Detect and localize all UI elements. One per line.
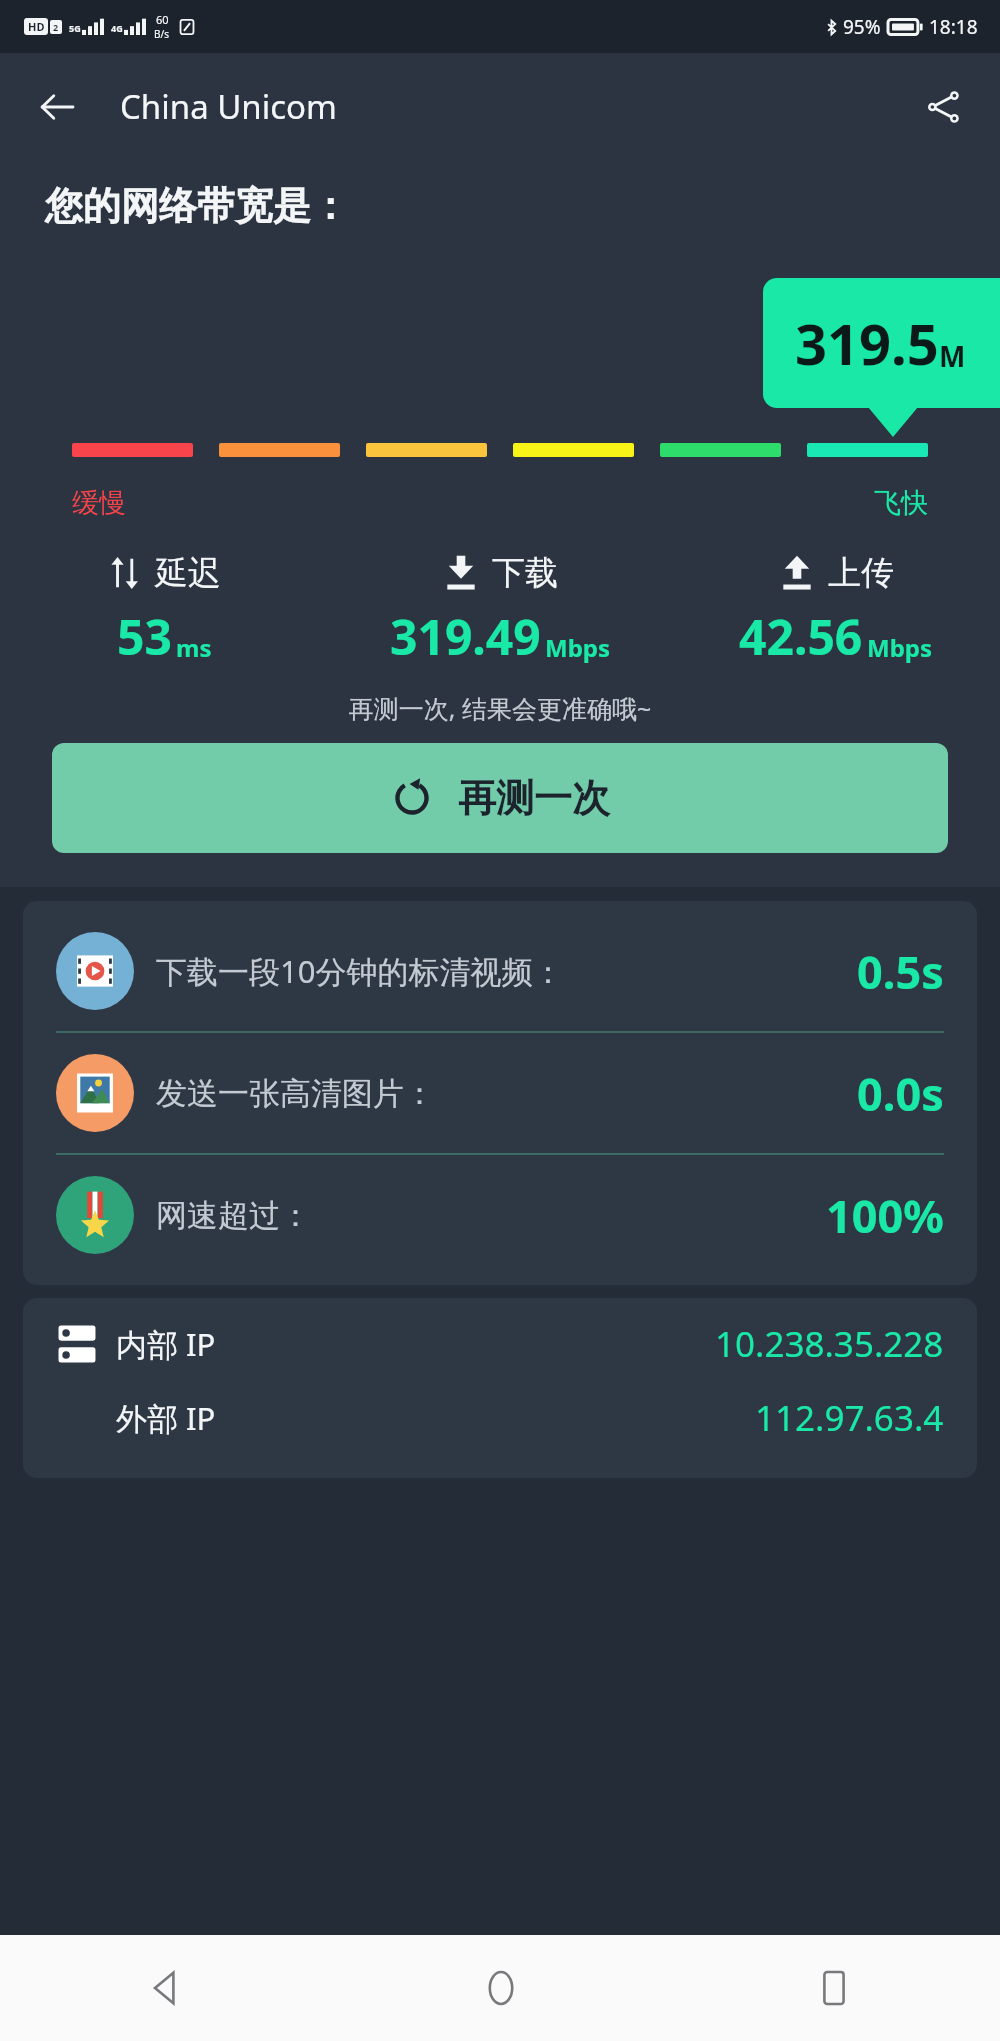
- staticText: 53: [117, 604, 172, 669]
- button[interactable]: 外部 IP: [56, 1394, 944, 1442]
- staticText: China Unicom: [120, 84, 337, 129]
- staticText: HD: [28, 19, 45, 34]
- button[interactable]: 发送一张高清图片：: [23, 1033, 977, 1153]
- staticText: 延迟: [155, 552, 221, 594]
- staticText: 发送一张高清图片：: [156, 1074, 435, 1113]
- staticText: 2: [53, 21, 59, 33]
- button[interactable]: Recent apps: [667, 1935, 1000, 2041]
- staticText: 内部 IP: [116, 1323, 216, 1365]
- staticText: Mbps: [867, 631, 933, 664]
- staticText: 缓慢: [72, 486, 126, 520]
- staticText: 网速超过：: [156, 1196, 311, 1235]
- staticText: 0.0s: [857, 1063, 944, 1124]
- staticText: 下载一段10分钟的标清视频：: [156, 950, 564, 992]
- button[interactable]: Back: [0, 1935, 334, 2041]
- staticText: 再测一次: [458, 774, 610, 822]
- staticText: M: [939, 337, 966, 375]
- staticText: 再测一次, 结果会更准确哦~: [0, 691, 1000, 725]
- button[interactable]: 网速超过：: [23, 1155, 977, 1275]
- staticText: 42.56: [739, 604, 863, 669]
- staticText: 5G: [69, 22, 81, 34]
- staticText: 319.49: [390, 604, 541, 669]
- staticText: ms: [176, 631, 212, 664]
- button[interactable]: 下载一段10分钟的标清视频：: [23, 911, 977, 1031]
- staticText: 您的网络带宽是：: [45, 182, 349, 230]
- staticText: 4G: [111, 22, 123, 34]
- button[interactable]: Back: [26, 76, 88, 138]
- staticText: 外部 IP: [116, 1397, 216, 1439]
- button[interactable]: 内部 IP: [56, 1320, 944, 1368]
- staticText: 飞快: [874, 486, 928, 520]
- staticText: 10.238.35.228: [715, 1320, 944, 1368]
- staticText: 18:18: [929, 14, 978, 40]
- staticText: Mbps: [545, 631, 611, 664]
- button[interactable]: Share: [912, 76, 974, 138]
- button[interactable]: Home: [334, 1935, 667, 2041]
- staticText: 60: [156, 12, 169, 27]
- staticText: 112.97.63.4: [755, 1394, 944, 1442]
- staticText: 下载: [492, 552, 558, 594]
- staticText: B/s: [154, 27, 170, 41]
- staticText: 100%: [826, 1185, 944, 1246]
- staticText: 319.5: [795, 305, 939, 381]
- staticText: 0.5s: [857, 941, 944, 1002]
- staticText: 95%: [843, 14, 881, 40]
- staticText: 上传: [828, 552, 894, 594]
- button[interactable]: 再测一次: [52, 743, 948, 853]
